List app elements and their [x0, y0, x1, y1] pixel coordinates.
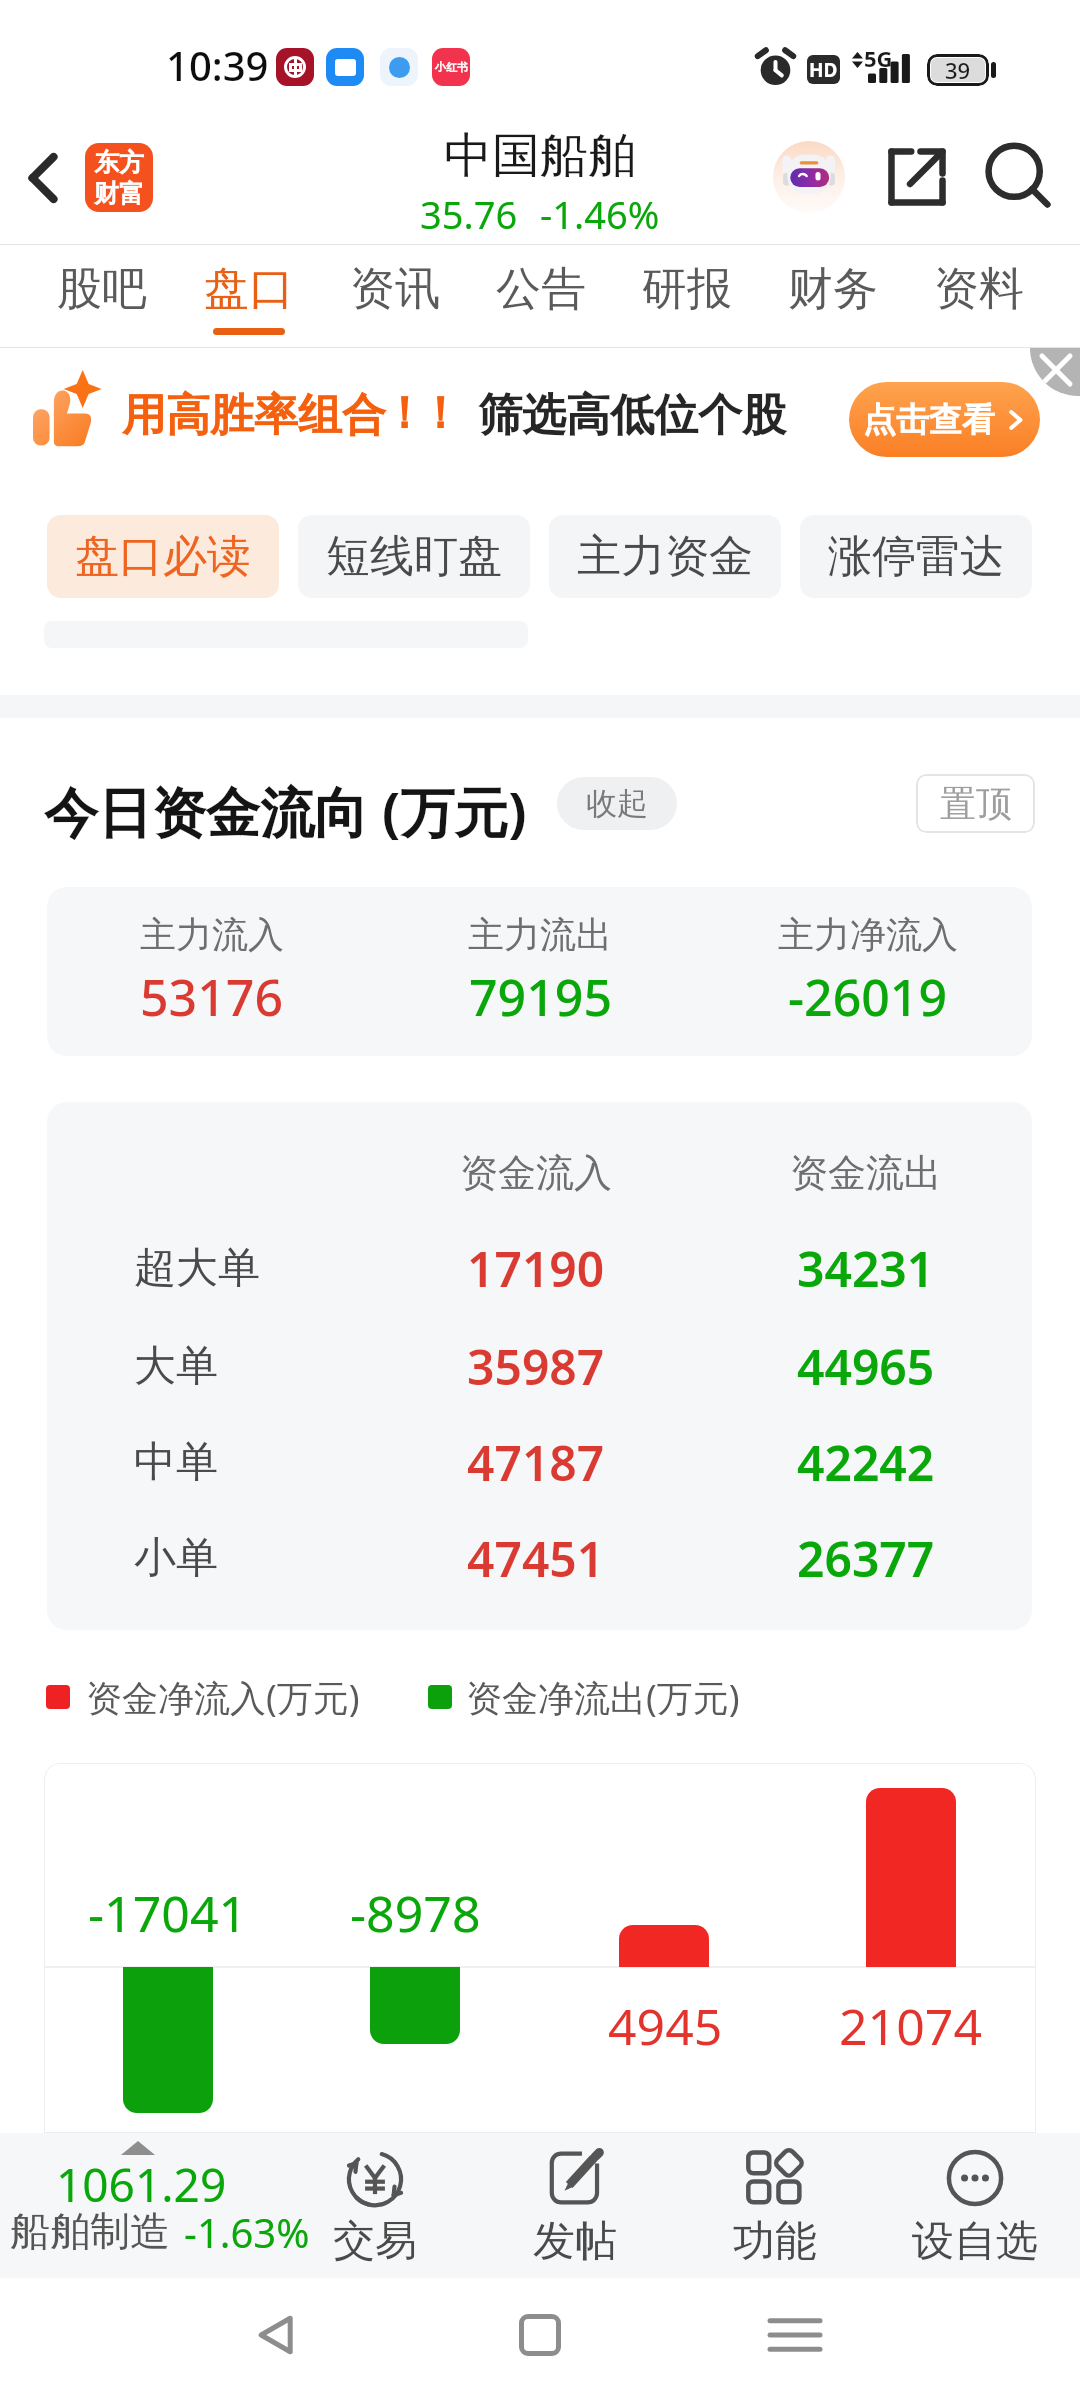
button[interactable]: Back [232, 2290, 322, 2380]
staticText: 盘口 [204, 261, 294, 318]
button[interactable]: 交易 [285, 2133, 465, 2278]
staticText: 点击查看 [863, 399, 995, 441]
button[interactable]: Back [4, 138, 84, 218]
staticText: 小红书 [435, 60, 468, 74]
button[interactable]: 设自选 [885, 2133, 1065, 2278]
staticText: 主力资金 [577, 529, 753, 584]
staticText: 财务 [788, 261, 878, 318]
staticText: 1061.29 [56, 2153, 227, 2203]
staticText: -8978 [350, 1879, 481, 1947]
staticText: 17190 [467, 1236, 605, 1301]
staticText: 股吧 [57, 261, 147, 318]
staticText: 今日资金流向 (万元) [44, 774, 527, 848]
staticText: 大单 [134, 1340, 218, 1393]
button[interactable]: AI assistant [773, 141, 845, 213]
button[interactable]: 盘口必读 [47, 515, 279, 598]
staticText: 筛选高低位个股 [478, 388, 786, 443]
staticText: 44965 [797, 1334, 935, 1399]
staticText: 资金净流出(万元) [466, 1673, 740, 1722]
staticText: -1.46% [540, 188, 660, 240]
staticText: 53176 [140, 963, 283, 1031]
staticText: 79195 [469, 963, 612, 1031]
staticText: 35987 [467, 1334, 605, 1399]
staticText: 研报 [642, 261, 732, 318]
staticText: 交易 [333, 2215, 417, 2268]
button[interactable]: 点击查看 [849, 382, 1040, 457]
button[interactable]: 涨停雷达 [800, 515, 1032, 598]
staticText: 主力流出 [468, 912, 612, 957]
staticText: 财富 [94, 178, 144, 209]
staticText: 涨停雷达 [828, 529, 1004, 584]
staticText: -26019 [788, 963, 948, 1031]
button[interactable]: 收起 [557, 777, 677, 830]
staticText: 26377 [797, 1526, 935, 1591]
staticText: 公告 [496, 261, 586, 318]
staticText: 39 [945, 55, 971, 85]
button[interactable]: 功能 [685, 2133, 865, 2278]
staticText: 资料 [934, 261, 1024, 318]
staticText: ！！ [386, 386, 458, 441]
staticText: 中单 [134, 1436, 218, 1489]
button[interactable]: 股吧 [28, 245, 175, 347]
button[interactable]: 资讯 [322, 245, 468, 347]
staticText: 中国船舶 [444, 126, 636, 186]
button[interactable]: 财务 [760, 245, 906, 347]
staticText: 功能 [733, 2215, 817, 2268]
button[interactable]: 置顶 [916, 774, 1035, 833]
button[interactable]: 短线盯盘 [298, 515, 530, 598]
staticText: 小单 [134, 1532, 218, 1585]
staticText: -1.63% [184, 2205, 310, 2257]
staticText: HD [809, 57, 838, 83]
staticText: 资金流出 [790, 1149, 942, 1197]
staticText: 置顶 [940, 781, 1012, 826]
button[interactable]: Recent apps [750, 2290, 840, 2380]
button[interactable]: 盘口 [175, 245, 322, 347]
button[interactable]: 东方 [85, 143, 153, 212]
button[interactable]: Search [973, 132, 1063, 222]
staticText: 5G [864, 43, 893, 73]
button[interactable]: 主力资金 [549, 515, 781, 598]
staticText: 设自选 [912, 2215, 1038, 2268]
button[interactable]: Share [872, 132, 962, 222]
staticText: 收起 [586, 784, 648, 823]
button[interactable]: Home [495, 2290, 585, 2380]
staticText: 42242 [797, 1430, 935, 1495]
staticText: 35.76 [420, 188, 518, 240]
staticText: 21074 [839, 1992, 982, 2060]
button[interactable]: 研报 [614, 245, 760, 347]
staticText: 10:39 [166, 38, 269, 92]
staticText: 47187 [467, 1430, 605, 1495]
button[interactable]: 发帖 [485, 2133, 665, 2278]
staticText: 盘口必读 [75, 529, 251, 584]
staticText: 47451 [467, 1526, 605, 1591]
staticText: 资金净流入(万元) [86, 1673, 360, 1722]
staticText: 34231 [797, 1236, 935, 1301]
button[interactable]: Close advertisement [1030, 348, 1080, 396]
staticText: 船舶制造 [10, 2206, 170, 2256]
staticText: -17041 [88, 1879, 248, 1947]
button[interactable]: 1061.29 [0, 2133, 300, 2278]
staticText: 短线盯盘 [326, 529, 502, 584]
staticText: 资讯 [350, 261, 440, 318]
staticText: 东方 [94, 147, 144, 178]
staticText: 资金流入 [460, 1149, 612, 1197]
staticText: 主力净流入 [778, 912, 958, 957]
button[interactable]: 公告 [468, 245, 614, 347]
staticText: 4945 [608, 1992, 723, 2060]
staticText: 用高胜率组合 [122, 388, 386, 443]
button[interactable]: 资料 [906, 245, 1052, 347]
staticText: 发帖 [533, 2215, 617, 2268]
staticText: 主力流入 [140, 912, 284, 957]
staticText: 超大单 [134, 1242, 260, 1295]
